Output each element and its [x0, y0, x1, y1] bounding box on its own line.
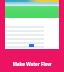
button[interactable] [5, 45, 59, 49]
button[interactable]: Action [29, 44, 34, 47]
button[interactable] [5, 25, 59, 29]
button[interactable] [5, 33, 59, 37]
button[interactable] [5, 29, 59, 33]
button[interactable] [5, 41, 59, 45]
staticText: Make Water Flow [0, 61, 64, 67]
button[interactable] [5, 37, 59, 41]
